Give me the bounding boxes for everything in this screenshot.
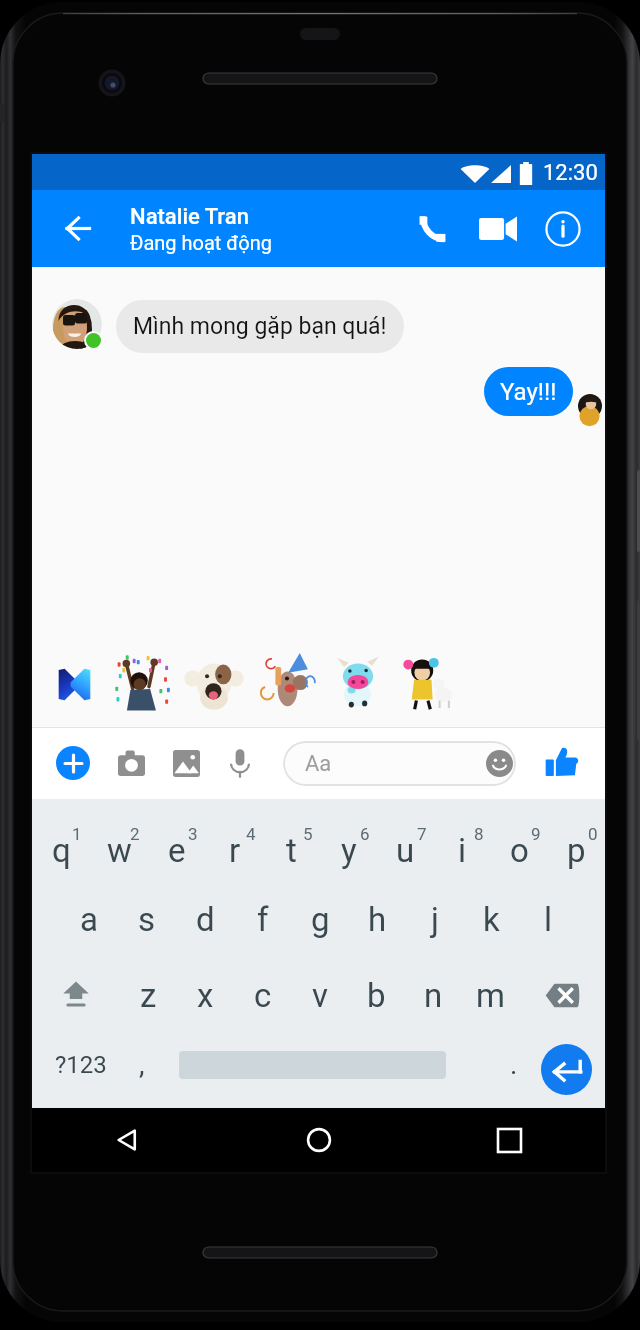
staticText: l	[544, 900, 553, 939]
button[interactable]: Magic suggestions	[42, 652, 106, 716]
button[interactable]: Sticker 4	[326, 650, 390, 714]
button[interactable]: Sticker 5	[396, 650, 460, 714]
button[interactable]: Period	[486, 1021, 542, 1108]
button[interactable]: Enter	[530, 1021, 602, 1108]
staticText: a	[80, 900, 98, 939]
button[interactable]: Back	[32, 1108, 223, 1172]
staticText: ,	[139, 1048, 145, 1081]
staticText: 4	[246, 824, 256, 844]
button[interactable]: b	[348, 959, 405, 1031]
staticText: Aa	[305, 751, 332, 777]
button[interactable]: Send like	[535, 736, 589, 790]
button[interactable]: h	[349, 883, 406, 955]
button[interactable]: Camera	[104, 736, 158, 790]
button[interactable]: Voice message	[213, 736, 267, 790]
button[interactable]: Comma	[112, 1021, 172, 1108]
staticText: 1	[72, 824, 82, 844]
staticText: ?123	[55, 1051, 107, 1079]
button[interactable]: x	[177, 959, 234, 1031]
staticText: q	[52, 831, 71, 870]
button[interactable]: Video call	[466, 190, 530, 267]
staticText: p	[567, 831, 586, 870]
staticText: 0	[588, 824, 598, 844]
staticText: u	[396, 831, 415, 870]
staticText: h	[368, 900, 387, 939]
staticText: 7	[417, 824, 427, 844]
staticText: w	[107, 831, 132, 870]
button[interactable]: Aa	[283, 741, 516, 786]
button[interactable]: Home	[223, 1108, 414, 1172]
staticText: j	[431, 900, 439, 939]
staticText: c	[254, 976, 272, 1015]
staticText: n	[424, 976, 443, 1015]
button[interactable]: Backspace	[519, 959, 605, 1031]
button[interactable]: 3	[148, 799, 206, 877]
staticText: Đang hoạt động	[130, 231, 272, 254]
staticText: Natalie Tran	[130, 204, 249, 230]
button[interactable]: d	[176, 883, 234, 955]
button[interactable]: k	[463, 883, 520, 955]
button[interactable]: n	[405, 959, 462, 1031]
button[interactable]: m	[462, 959, 519, 1031]
staticText: o	[510, 831, 529, 870]
button[interactable]: Sticker 3	[255, 650, 319, 714]
button[interactable]: Back	[43, 190, 113, 267]
staticText: d	[196, 900, 215, 939]
staticText: Yay!!!	[500, 378, 557, 406]
staticText: s	[138, 900, 156, 939]
button[interactable]: Mình mong gặp bạn quá!	[116, 300, 404, 353]
button[interactable]: 1	[32, 799, 90, 877]
button[interactable]: z	[119, 959, 177, 1031]
staticText: f	[257, 900, 269, 939]
button[interactable]: Sticker 1	[110, 650, 174, 714]
button[interactable]: Recent apps	[414, 1108, 605, 1172]
staticText: 12:30	[543, 160, 598, 186]
button[interactable]: 9	[491, 799, 548, 877]
staticText: 6	[360, 824, 370, 844]
button[interactable]: s	[118, 883, 176, 955]
button[interactable]: v	[291, 959, 348, 1031]
staticText: k	[483, 900, 500, 939]
staticText: v	[312, 976, 328, 1015]
button[interactable]: Space	[172, 1021, 452, 1108]
button[interactable]: 2	[90, 799, 148, 877]
staticText: x	[197, 976, 214, 1015]
staticText: t	[286, 831, 297, 870]
staticText: 3	[188, 824, 198, 844]
staticText: i	[458, 831, 467, 870]
button[interactable]: Open actions	[46, 736, 100, 790]
button[interactable]: Call	[400, 190, 464, 267]
button[interactable]: g	[292, 883, 349, 955]
staticText: b	[367, 976, 386, 1015]
staticText: 5	[303, 824, 313, 844]
button[interactable]: f	[234, 883, 292, 955]
staticText: .	[510, 1048, 518, 1081]
staticText: 2	[130, 824, 140, 844]
button[interactable]: 8	[434, 799, 491, 877]
staticText: z	[140, 976, 157, 1015]
button[interactable]: l	[520, 883, 577, 955]
button[interactable]: 7	[377, 799, 434, 877]
button[interactable]: Shift	[32, 959, 119, 1031]
button[interactable]: Gallery	[159, 736, 213, 790]
staticText: Mình mong gặp bạn quá!	[133, 313, 387, 340]
button[interactable]: Symbols	[36, 1021, 126, 1108]
button[interactable]: a	[60, 883, 118, 955]
staticText: r	[229, 831, 241, 870]
button[interactable]: Yay!!!	[484, 367, 573, 416]
button[interactable]: 5	[263, 799, 320, 877]
staticText: e	[168, 831, 186, 870]
button[interactable]: 0	[548, 799, 605, 877]
button[interactable]: 4	[206, 799, 263, 877]
button[interactable]: Sticker 2	[182, 650, 246, 714]
button[interactable]: j	[406, 883, 463, 955]
button[interactable]: 6	[320, 799, 377, 877]
button[interactable]: Conversation info	[531, 190, 595, 267]
button[interactable]: c	[234, 959, 291, 1031]
staticText: y	[341, 831, 357, 870]
staticText: 9	[531, 824, 541, 844]
staticText: g	[311, 900, 330, 939]
staticText: m	[476, 976, 505, 1015]
staticText: 8	[474, 824, 484, 844]
